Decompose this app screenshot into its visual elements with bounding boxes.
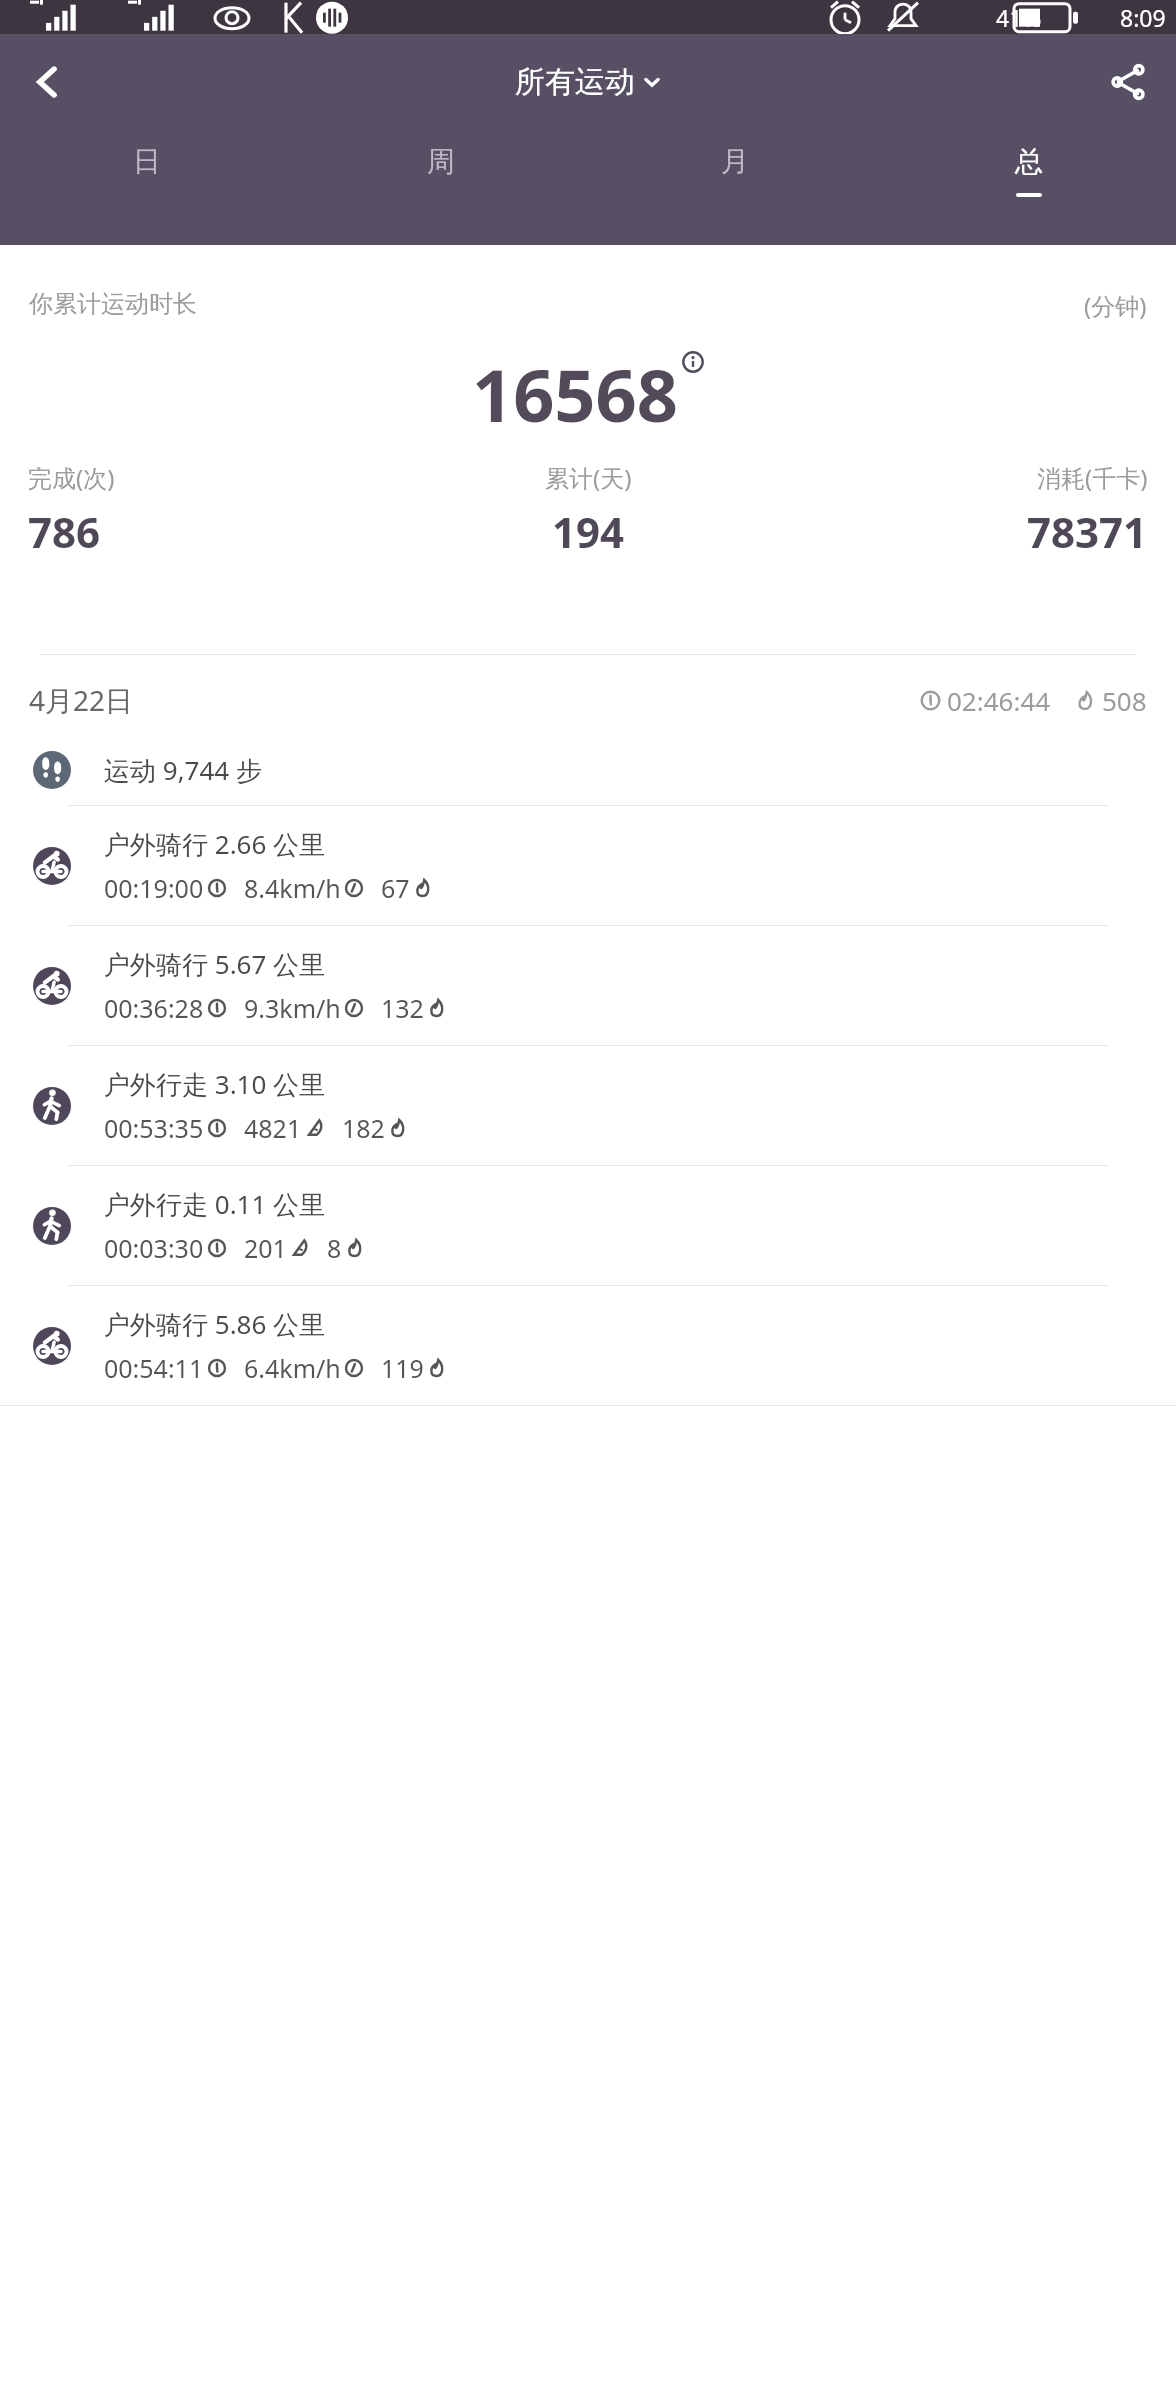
staticText: 4821 [244,1111,302,1145]
button[interactable]: Back [0,34,96,130]
staticText: 00:19:00 [104,871,204,905]
button[interactable]: Info [682,351,704,373]
staticText: 78371 [1027,503,1148,560]
staticText: 508 [1102,683,1147,718]
staticText: 8.4km/h [244,871,341,905]
staticText: 41% [996,2,1042,33]
staticText: 119 [381,1351,424,1385]
staticText: 户外骑行 5.86 公里 [104,1306,326,1342]
staticText: 日 [133,144,161,179]
staticText: 6.4km/h [244,1351,341,1385]
staticText: 户外行走 3.10 公里 [104,1066,326,1102]
staticText: 201 [244,1231,287,1265]
staticText: 00:36:28 [104,991,204,1025]
staticText: 累计(天) [545,461,632,494]
staticText: 194 [552,503,625,560]
staticText: 4月22日 [29,681,134,719]
button[interactable]: 户外骑行 5.86 公里 [0,1286,1176,1405]
staticText: 户外骑行 2.66 公里 [104,826,326,862]
staticText: 运动 9,744 步 [104,752,262,788]
staticText: 完成(次) [28,461,115,494]
staticText: 户外行走 0.11 公里 [104,1186,326,1222]
staticText: 总 [1015,144,1043,179]
button[interactable]: Share [1080,34,1176,130]
staticText: 00:53:35 [104,1111,204,1145]
button[interactable]: 户外骑行 5.67 公里 [0,926,1176,1045]
button[interactable]: 户外行走 3.10 公里 [0,1046,1176,1165]
staticText: 户外骑行 5.67 公里 [104,946,326,982]
staticText: 9.3km/h [244,991,341,1025]
staticText: 消耗(千卡) [1037,461,1148,494]
staticText: 132 [381,991,424,1025]
staticText: 月 [721,144,749,179]
staticText: 67 [381,871,410,905]
staticText: 02:46:44 [947,683,1051,718]
staticText: 周 [427,144,455,179]
staticText: 8 [327,1231,342,1265]
button[interactable]: 月 [588,130,882,222]
staticText: 16568 [472,345,678,443]
button[interactable]: 所有运动 [515,63,661,101]
button[interactable]: 运动 9,744 步 [0,735,1176,805]
staticText: (分钟) [1084,289,1147,322]
button[interactable]: 户外行走 0.11 公里 [0,1166,1176,1285]
staticText: 00:54:11 [104,1351,204,1385]
button[interactable]: 日 [0,130,294,222]
button[interactable]: 周 [294,130,588,222]
staticText: 182 [342,1111,385,1145]
staticText: 你累计运动时长 [29,289,197,319]
button[interactable]: 总 [882,130,1176,222]
staticText: 786 [28,503,101,560]
staticText: 8:09 [1120,2,1166,33]
button[interactable]: 户外骑行 2.66 公里 [0,806,1176,925]
staticText: 00:03:30 [104,1231,204,1265]
staticText: 所有运动 [515,63,635,101]
